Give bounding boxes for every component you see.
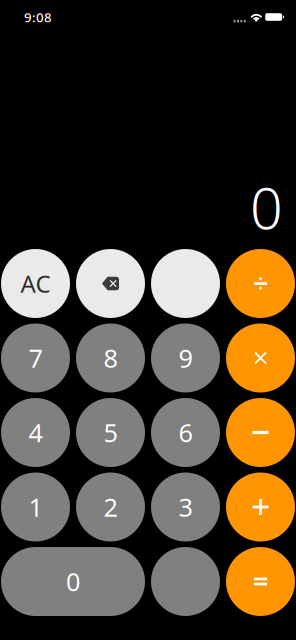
button[interactable]: Percent (151, 249, 220, 318)
staticText: 1 (28, 490, 42, 524)
staticText: 9:08 (24, 8, 52, 26)
button[interactable]: Minus (226, 398, 295, 467)
button[interactable]: 5 (76, 398, 145, 467)
staticText: 6 (178, 416, 192, 449)
button[interactable]: All clear (1, 249, 70, 318)
button[interactable]: Multiply (226, 323, 295, 392)
staticText: 3 (178, 490, 192, 524)
button[interactable]: 6 (151, 398, 220, 467)
button[interactable]: Delete (76, 249, 145, 318)
button[interactable]: 2 (76, 472, 145, 541)
button[interactable]: Decimal point (151, 547, 220, 616)
button[interactable]: 1 (1, 472, 70, 541)
button[interactable]: Divide (226, 249, 295, 318)
button[interactable]: 7 (1, 323, 70, 392)
button[interactable]: 8 (76, 323, 145, 392)
staticText: 4 (28, 416, 42, 449)
staticText: 9 (178, 341, 192, 375)
staticText: 5 (103, 416, 117, 449)
staticText: 0 (250, 169, 283, 245)
button[interactable]: 9 (151, 323, 220, 392)
button[interactable]: Equals (226, 547, 295, 616)
button[interactable]: 3 (151, 472, 220, 541)
button[interactable]: 0 (1, 547, 145, 616)
staticText: AC (20, 268, 50, 299)
staticText: 2 (103, 490, 117, 524)
staticText: 7 (28, 341, 42, 375)
staticText: 0 (66, 565, 80, 598)
button[interactable]: 4 (1, 398, 70, 467)
staticText: 8 (103, 341, 117, 375)
button[interactable]: Plus (226, 472, 295, 541)
